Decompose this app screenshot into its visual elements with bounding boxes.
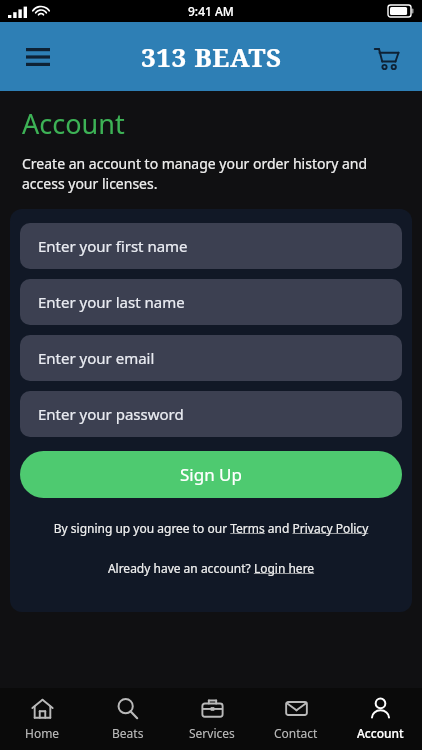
staticText: Home <box>25 725 60 741</box>
button[interactable]: Enter your email <box>20 335 402 381</box>
button[interactable]: Cart <box>364 35 408 79</box>
button[interactable]: Sign Up <box>20 451 402 498</box>
staticText: Sign Up <box>180 463 242 486</box>
staticText: Services <box>189 725 235 741</box>
button[interactable]: By signing up you agree to our Terms and… <box>20 520 402 536</box>
button[interactable]: Menu <box>14 33 62 81</box>
staticText: Enter your email <box>38 348 155 368</box>
button[interactable]: Home <box>0 688 85 750</box>
staticText: Enter your last name <box>38 292 185 312</box>
button[interactable]: Enter your first name <box>20 223 402 269</box>
staticText: Beats <box>112 725 144 741</box>
staticText: Enter your password <box>38 404 184 424</box>
button[interactable]: Enter your last name <box>20 279 402 325</box>
staticText: Enter your first name <box>38 236 188 256</box>
button[interactable]: Contact <box>254 688 338 750</box>
staticText: Contact <box>274 725 318 741</box>
button[interactable]: Enter your password <box>20 391 402 437</box>
staticText: Account <box>22 105 125 142</box>
button[interactable]: Services <box>170 688 254 750</box>
staticText: Create an account to manage your order h… <box>22 154 402 193</box>
staticText: 9:41 AM <box>188 3 234 19</box>
staticText: 313 BEATS <box>141 39 282 74</box>
button[interactable]: Beats <box>85 688 170 750</box>
button[interactable]: Already have an account? Login here <box>20 560 402 576</box>
button[interactable]: Account <box>338 688 422 750</box>
staticText: Account <box>357 725 404 741</box>
